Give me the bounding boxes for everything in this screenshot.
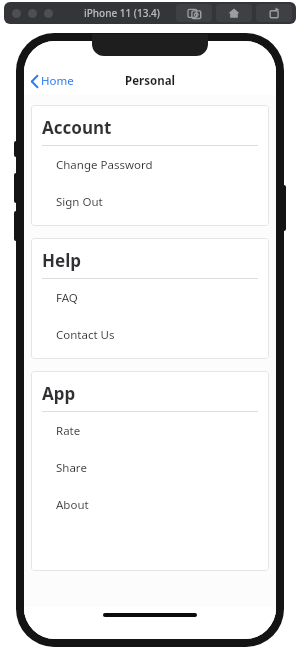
button[interactable] — [44, 9, 53, 18]
staticText: Contact Us — [56, 327, 115, 343]
staticText: Personal — [125, 73, 175, 89]
staticText: Sign Out — [56, 194, 103, 210]
button[interactable] — [28, 9, 37, 18]
button[interactable]: Rotate — [256, 4, 292, 22]
button[interactable]: Sign Out — [31, 183, 269, 220]
staticText: FAQ — [56, 290, 78, 306]
staticText: Share — [56, 460, 87, 476]
staticText: About — [56, 497, 89, 513]
staticText: Change Password — [56, 157, 153, 173]
button[interactable]: Screenshot — [176, 4, 212, 22]
button[interactable]: Rate — [31, 412, 269, 449]
staticText: Help — [42, 249, 81, 272]
button[interactable] — [12, 9, 21, 18]
button[interactable]: Home — [216, 4, 252, 22]
staticText: Home — [41, 73, 74, 89]
button[interactable]: Home — [29, 70, 76, 92]
button[interactable]: Change Password — [31, 146, 269, 183]
staticText: iPhone 11 (13.4) — [84, 6, 160, 20]
staticText: Rate — [56, 423, 81, 439]
button[interactable]: FAQ — [31, 279, 269, 316]
button[interactable]: Contact Us — [31, 316, 269, 353]
button[interactable]: About — [31, 486, 269, 523]
button[interactable]: Share — [31, 449, 269, 486]
staticText: App — [42, 382, 76, 405]
staticText: Account — [42, 116, 112, 139]
